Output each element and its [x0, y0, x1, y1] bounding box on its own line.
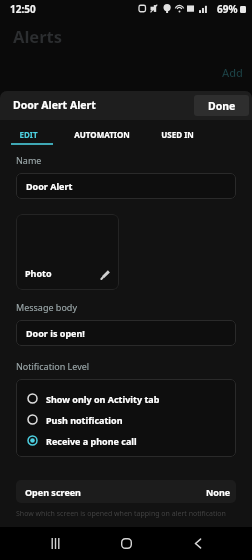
staticText: Open screen [25, 486, 81, 498]
staticText: Push notification [46, 414, 123, 426]
staticText: AUTOMATION [74, 129, 130, 140]
button[interactable]: EDIT [0, 120, 57, 154]
button[interactable]: Add [213, 63, 252, 82]
staticText: None [206, 486, 231, 498]
button[interactable]: Receive a phone call [16, 430, 236, 451]
button[interactable]: Back [182, 527, 212, 560]
staticText: Notification Level [16, 360, 90, 372]
staticText: Message body [16, 301, 77, 313]
button[interactable]: Photo [16, 214, 119, 290]
staticText: Alerts [13, 25, 63, 47]
staticText: Name [16, 154, 42, 166]
staticText: Door Alert Alert [13, 98, 96, 112]
button[interactable]: AUTOMATION [57, 120, 146, 154]
staticText: Door is open! [26, 327, 85, 339]
button[interactable]: USED IN [146, 120, 208, 154]
button[interactable]: Door Alert [16, 173, 236, 199]
button[interactable]: Recent apps [40, 527, 70, 560]
staticText: Photo [25, 267, 52, 279]
staticText: 69% [217, 2, 238, 16]
staticText: Door Alert [26, 180, 73, 192]
button[interactable]: Home [111, 527, 141, 560]
staticText: USED IN [161, 129, 194, 140]
button[interactable]: Door is open! [16, 320, 236, 346]
button[interactable]: Push notification [16, 409, 236, 430]
button[interactable]: Open screen [16, 480, 236, 503]
button[interactable]: Show only on Activity tab [16, 388, 236, 409]
staticText: Receive a phone call [46, 435, 137, 447]
staticText: Done [208, 99, 236, 113]
staticText: Show only on Activity tab [46, 393, 160, 405]
button[interactable]: Done [194, 95, 249, 116]
staticText: 12:50 [10, 2, 36, 16]
staticText: Show which screen is opened when tapping… [16, 509, 226, 519]
other: Edit photo [99, 268, 112, 281]
staticText: EDIT [19, 129, 38, 140]
staticText: Add [222, 65, 243, 80]
